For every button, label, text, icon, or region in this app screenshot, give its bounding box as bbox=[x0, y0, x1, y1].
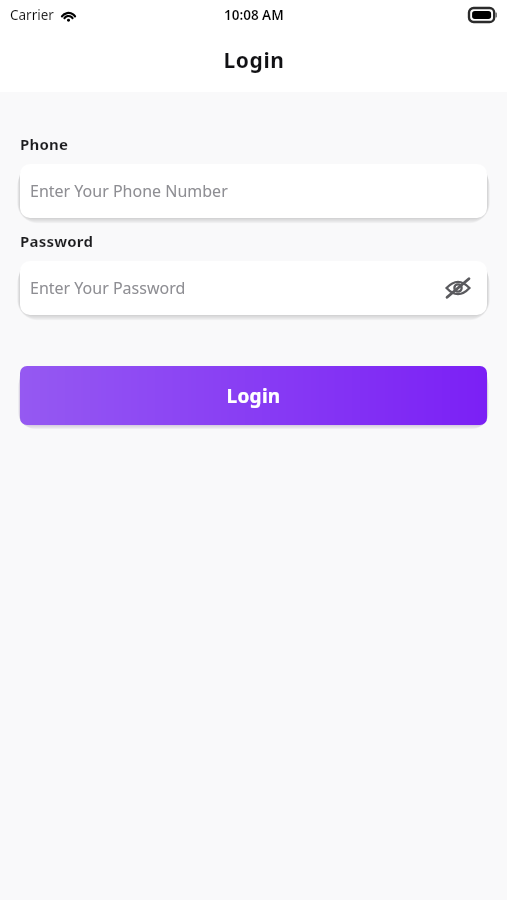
staticText: 10:08 AM bbox=[224, 6, 284, 24]
staticText: Enter Your Password bbox=[30, 277, 439, 299]
button[interactable]: Enter Your Password bbox=[20, 261, 487, 315]
button[interactable]: Show password bbox=[439, 269, 477, 307]
staticText: Phone bbox=[20, 134, 69, 154]
staticText: Login bbox=[226, 383, 281, 409]
staticText: Login bbox=[223, 46, 285, 75]
staticText: Carrier bbox=[10, 6, 54, 24]
button[interactable]: Enter Your Phone Number bbox=[20, 164, 487, 218]
staticText: Password bbox=[20, 231, 94, 251]
button[interactable]: Login bbox=[20, 366, 487, 425]
staticText: Enter Your Phone Number bbox=[30, 180, 477, 202]
